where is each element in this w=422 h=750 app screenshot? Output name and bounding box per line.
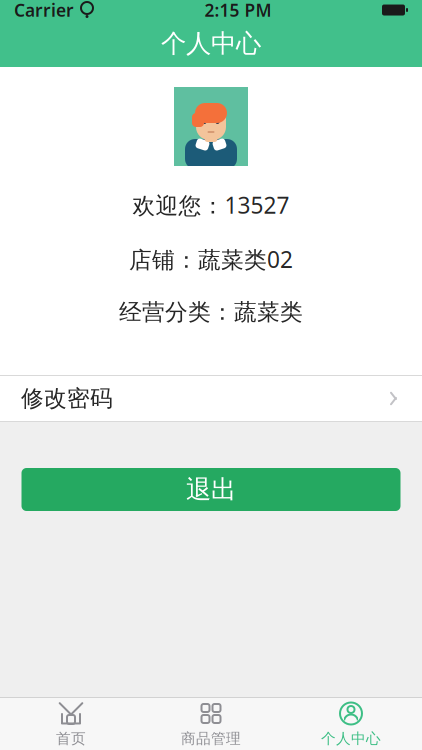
button[interactable]: 退出 <box>21 468 400 511</box>
staticText: 商品管理 <box>181 729 241 747</box>
staticText: 经营分类：蔬菜类 <box>119 298 303 326</box>
button[interactable]: 修改密码 <box>0 376 422 421</box>
staticText: 店铺：蔬菜类02 <box>129 244 293 274</box>
staticText: 退出 <box>186 474 236 505</box>
staticText: 首页 <box>56 729 86 747</box>
button[interactable]: 商品管理 <box>141 698 281 750</box>
staticText: 修改密码 <box>21 385 113 412</box>
button[interactable]: 个人中心 <box>281 698 421 750</box>
staticText: 个人中心 <box>321 729 381 747</box>
staticText: 欢迎您：13527 <box>132 190 289 220</box>
button[interactable]: 首页 <box>1 698 141 750</box>
staticText: 个人中心 <box>161 28 261 59</box>
staticText: 2:15 PM <box>204 0 271 21</box>
staticText: Carrier <box>14 0 74 21</box>
